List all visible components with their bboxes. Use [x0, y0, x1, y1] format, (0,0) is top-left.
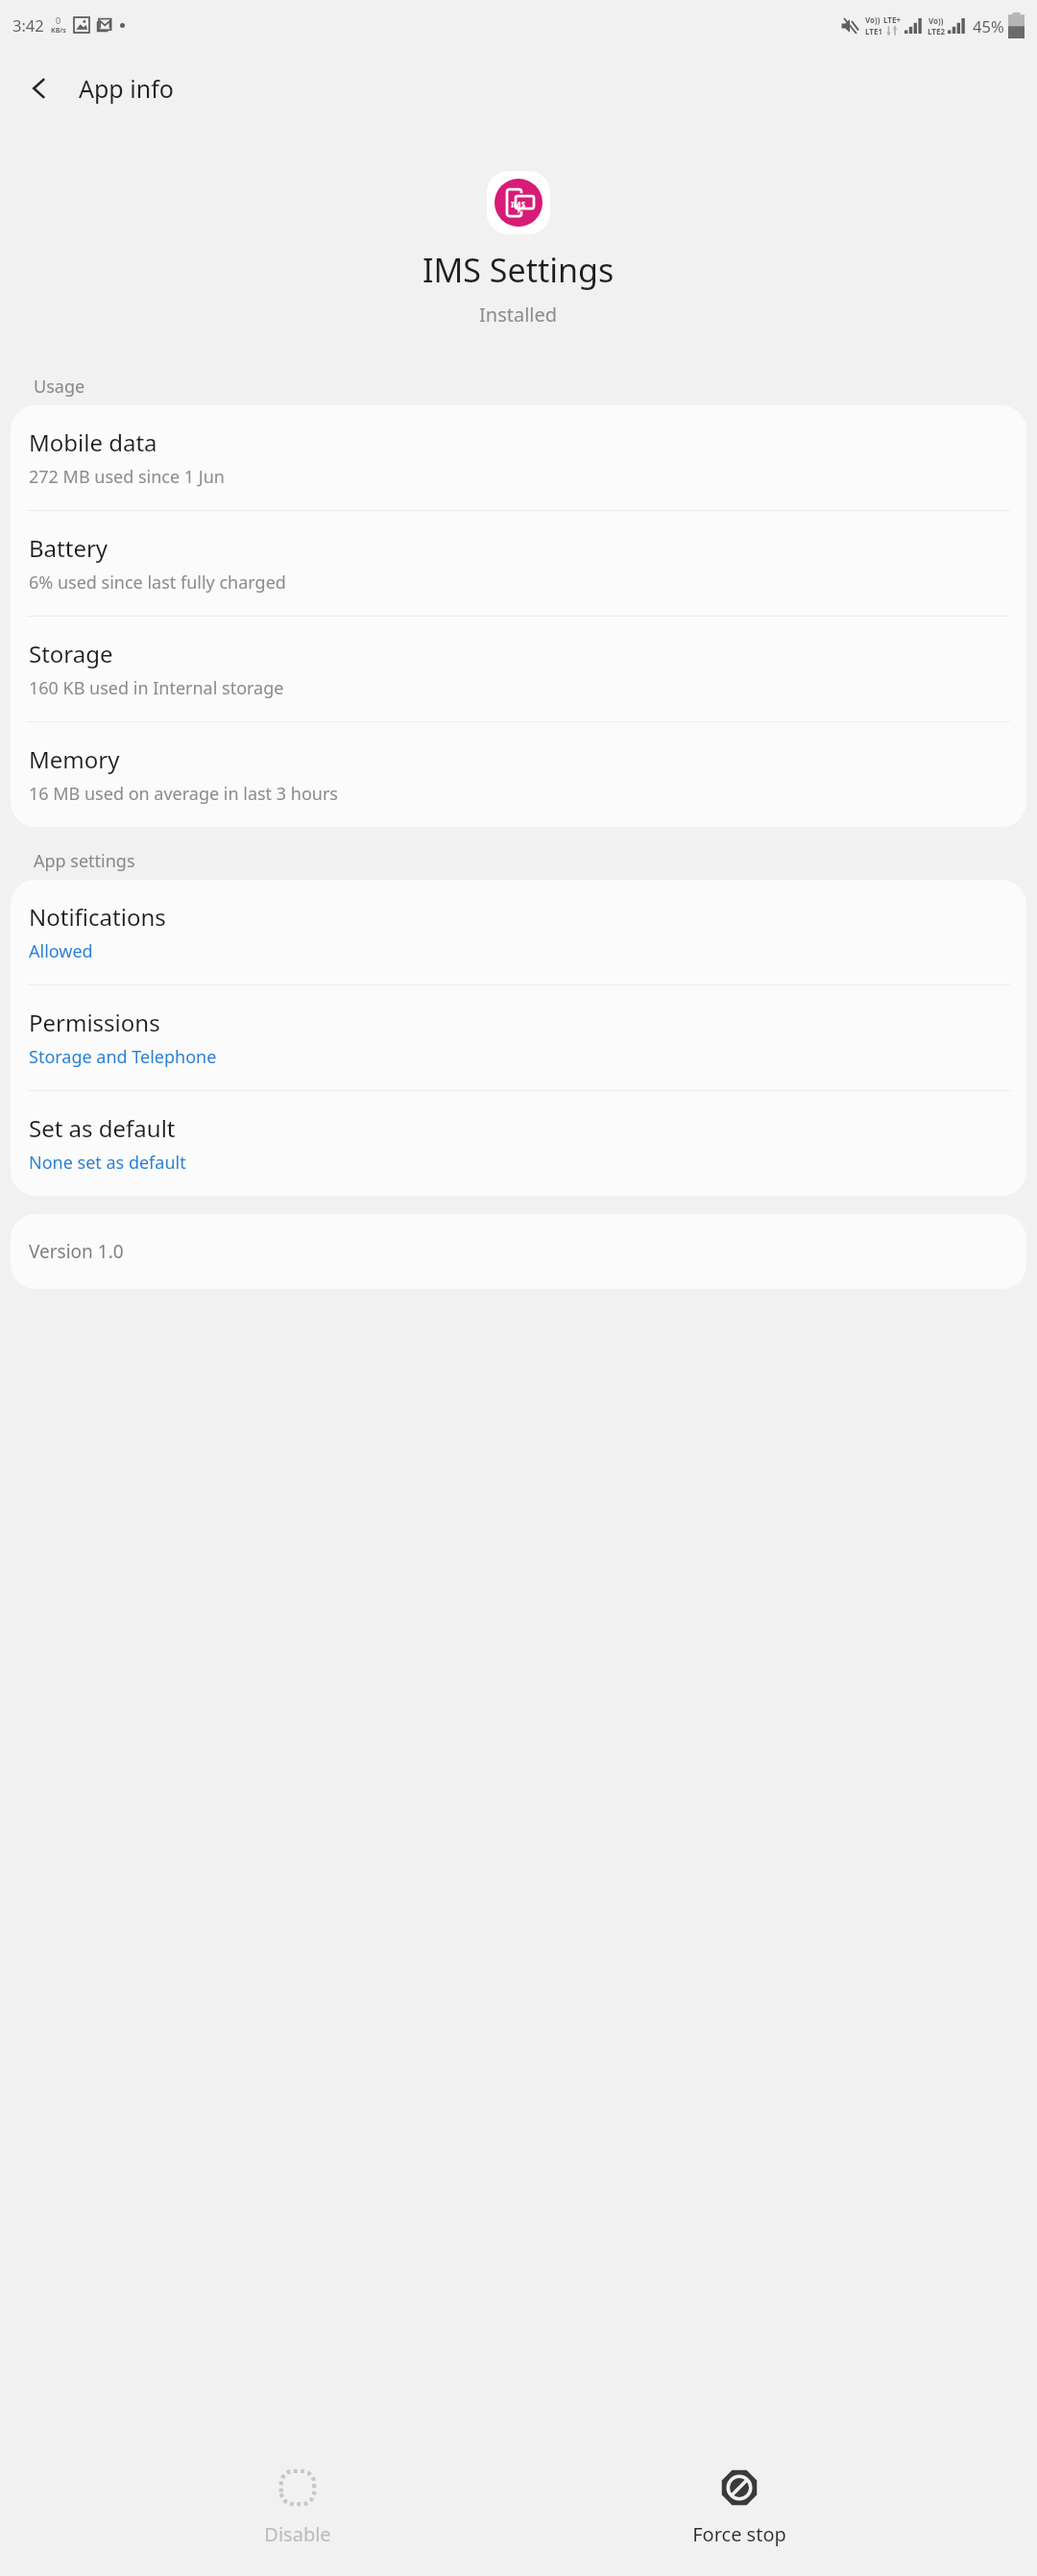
staticText: Allowed: [29, 939, 93, 963]
staticText: Version 1.0: [29, 1239, 124, 1264]
staticText: 16 MB used on average in last 3 hours: [29, 782, 338, 806]
staticText: Mobile data: [29, 426, 157, 458]
staticText: 0: [56, 14, 61, 26]
staticText: Vo)): [928, 15, 944, 26]
staticText: Vo)): [865, 14, 880, 25]
button[interactable]: Set as default: [11, 1091, 1026, 1196]
staticText: LTE1: [865, 26, 882, 36]
staticText: 6% used since last fully charged: [29, 571, 286, 595]
staticText: 45%: [973, 15, 1004, 36]
button[interactable]: Version 1.0: [11, 1214, 1026, 1289]
button[interactable]: Disable: [154, 2458, 442, 2557]
staticText: Installed: [479, 302, 558, 328]
button[interactable]: Mobile data: [11, 405, 1026, 510]
staticText: Battery: [29, 532, 109, 564]
staticText: LTE2: [928, 26, 945, 36]
button[interactable]: Back: [13, 61, 67, 115]
staticText: Force stop: [692, 2521, 786, 2547]
staticText: Permissions: [29, 1007, 160, 1038]
button[interactable]: Force stop: [595, 2458, 883, 2557]
staticText: App info: [79, 72, 174, 105]
staticText: Storage: [29, 638, 113, 669]
staticText: IMS: [511, 199, 526, 209]
button[interactable]: Memory: [11, 722, 1026, 827]
staticText: KB/s: [51, 26, 66, 36]
staticText: Disable: [264, 2521, 331, 2547]
staticText: Storage and Telephone: [29, 1045, 217, 1069]
staticText: App settings: [34, 849, 135, 873]
staticText: LTE+: [883, 14, 901, 25]
staticText: Usage: [34, 375, 85, 399]
staticText: 272 MB used since 1 Jun: [29, 465, 225, 489]
staticText: Notifications: [29, 901, 166, 933]
button[interactable]: Permissions: [11, 985, 1026, 1090]
button[interactable]: Notifications: [11, 880, 1026, 984]
staticText: 160 KB used in Internal storage: [29, 676, 284, 700]
staticText: Memory: [29, 743, 120, 775]
button[interactable]: Battery: [11, 511, 1026, 616]
button[interactable]: Storage: [11, 617, 1026, 721]
staticText: Set as default: [29, 1112, 176, 1144]
staticText: IMS Settings: [422, 248, 615, 292]
staticText: 3:42: [12, 14, 44, 36]
staticText: None set as default: [29, 1151, 186, 1175]
